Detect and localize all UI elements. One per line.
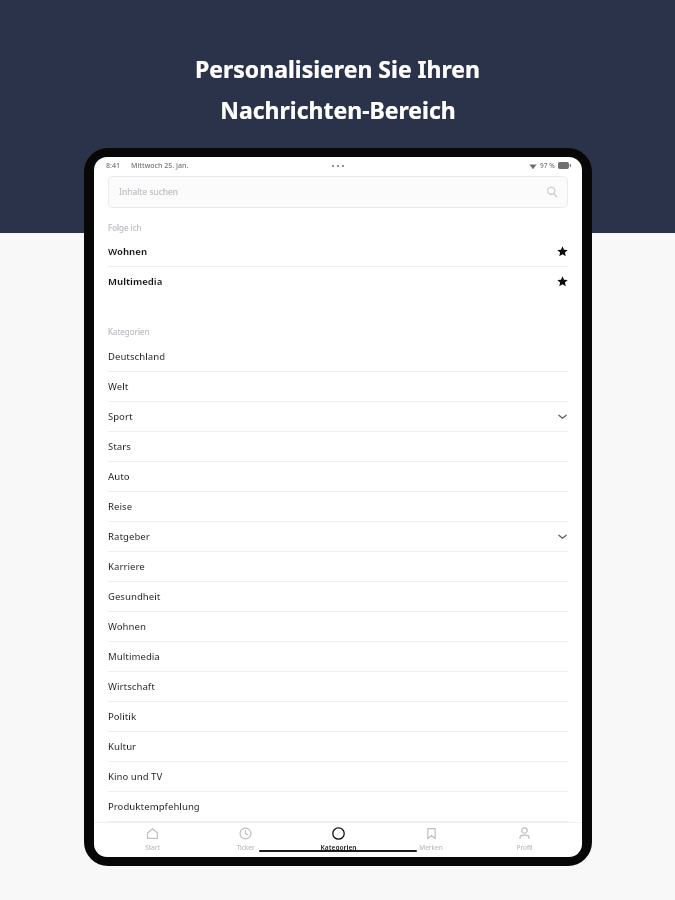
- other: Expand: [556, 410, 569, 423]
- staticText: Mittwoch 25. Jan.: [131, 161, 189, 171]
- staticText: Stars: [108, 440, 131, 453]
- staticText: Gesundheit: [108, 590, 161, 603]
- button[interactable]: Inhalte suchen: [108, 176, 568, 208]
- staticText: Profil: [516, 843, 533, 852]
- button[interactable]: Gesundheit: [94, 582, 582, 612]
- button[interactable]: Kategorien: [303, 823, 373, 852]
- button[interactable]: Reise: [94, 492, 582, 522]
- button[interactable]: Stars: [94, 432, 582, 462]
- staticText: Politik: [108, 710, 137, 723]
- button[interactable]: Auto: [94, 462, 582, 492]
- other: Unfollow: [557, 276, 568, 287]
- staticText: Karriere: [108, 560, 145, 573]
- button[interactable]: Wohnen: [94, 237, 582, 267]
- staticText: Folge ich: [108, 222, 142, 233]
- other: Search: [546, 186, 558, 198]
- staticText: Sport: [108, 410, 133, 423]
- staticText: Wirtschaft: [108, 680, 155, 693]
- button[interactable]: Profil: [489, 823, 559, 852]
- button[interactable]: Wirtschaft: [94, 672, 582, 702]
- staticText: Deutschland: [108, 350, 166, 363]
- button[interactable]: Ratgeber: [94, 522, 582, 552]
- button[interactable]: Start: [117, 823, 187, 852]
- staticText: Ticker: [236, 843, 255, 852]
- staticText: Inhalte suchen: [119, 186, 179, 198]
- staticText: Nachrichten-Bereich: [220, 94, 456, 125]
- staticText: Wohnen: [108, 620, 146, 633]
- button[interactable]: Produktempfehlung: [94, 792, 582, 822]
- staticText: Merken: [419, 843, 443, 852]
- staticText: Auto: [108, 470, 130, 483]
- staticText: Kategorien: [320, 843, 357, 852]
- button[interactable]: Sport: [94, 402, 582, 432]
- button[interactable]: Karriere: [94, 552, 582, 582]
- button[interactable]: Multimedia: [94, 267, 582, 296]
- staticText: Kategorien: [108, 326, 150, 337]
- staticText: Multimedia: [108, 275, 163, 288]
- staticText: Personalisieren Sie Ihren: [195, 53, 480, 84]
- button[interactable]: Welt: [94, 372, 582, 402]
- staticText: Produktempfehlung: [108, 800, 200, 813]
- other: Expand: [556, 530, 569, 543]
- staticText: Ratgeber: [108, 530, 150, 543]
- button[interactable]: Politik: [94, 702, 582, 732]
- staticText: 8:41: [106, 161, 120, 171]
- button[interactable]: Wohnen: [94, 612, 582, 642]
- button[interactable]: Kultur: [94, 732, 582, 762]
- staticText: Kultur: [108, 740, 137, 753]
- staticText: Start: [145, 843, 160, 852]
- button[interactable]: Deutschland: [94, 342, 582, 372]
- staticText: Reise: [108, 500, 133, 513]
- staticText: Multimedia: [108, 650, 160, 663]
- staticText: 97 %: [540, 161, 555, 170]
- button[interactable]: Kino und TV: [94, 762, 582, 792]
- staticText: Wohnen: [108, 245, 148, 258]
- staticText: Kino und TV: [108, 770, 163, 783]
- button[interactable]: Ticker: [210, 823, 280, 852]
- other: Unfollow: [557, 246, 568, 257]
- staticText: Welt: [108, 380, 129, 393]
- button[interactable]: Multimedia: [94, 642, 582, 672]
- button[interactable]: Merken: [396, 823, 466, 852]
